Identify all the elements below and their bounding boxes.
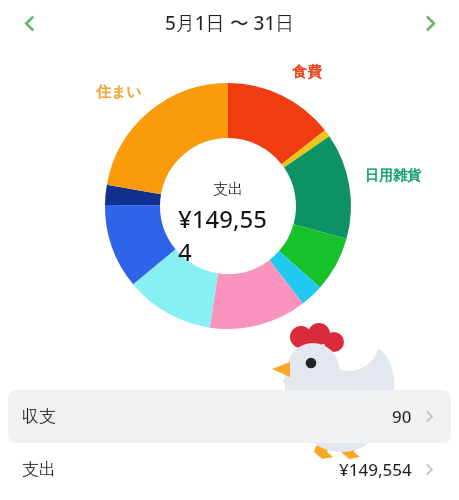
staticText: 支出 bbox=[22, 459, 56, 480]
staticText: 日用雑貨 bbox=[365, 167, 421, 185]
staticText: 5月1日 〜 31日 bbox=[165, 10, 295, 36]
staticText: ¥149,554 bbox=[339, 458, 412, 481]
button[interactable]: Next period bbox=[407, 0, 453, 46]
staticText: 収支 bbox=[22, 406, 56, 427]
staticText: ¥149,554 bbox=[178, 202, 278, 268]
button[interactable]: 収支 bbox=[8, 390, 451, 443]
staticText: 食費 bbox=[292, 63, 322, 82]
staticText: 住まい bbox=[96, 83, 142, 102]
button[interactable]: Previous period bbox=[6, 0, 52, 46]
staticText: 90 bbox=[392, 405, 412, 428]
button[interactable]: 支出 bbox=[8, 443, 451, 496]
staticText: 支出 bbox=[213, 180, 243, 199]
